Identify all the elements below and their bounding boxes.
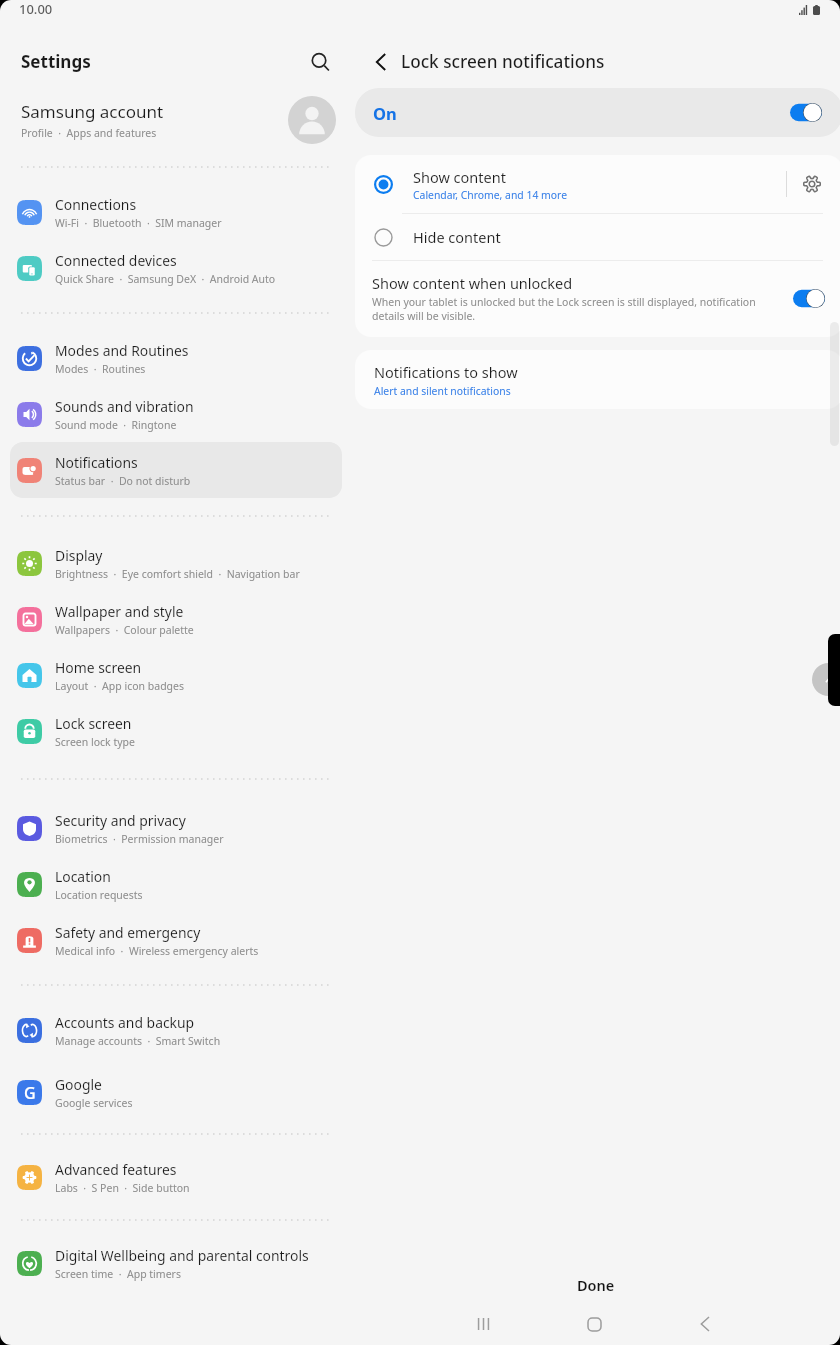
button[interactable]: Home screen bbox=[10, 647, 342, 703]
button[interactable]: Lock screen bbox=[10, 703, 342, 759]
staticText: Sound mode · Ringtone bbox=[55, 418, 177, 432]
button[interactable]: Display bbox=[10, 535, 342, 591]
staticText: Show content when unlocked bbox=[372, 273, 573, 293]
staticText: Medical info · Wireless emergency alerts bbox=[55, 944, 259, 958]
staticText: Alert and silent notifications bbox=[374, 384, 511, 398]
staticText: Lock screen notifications bbox=[401, 50, 605, 73]
staticText: When your tablet is unlocked but the Loc… bbox=[372, 295, 781, 323]
staticText: Settings bbox=[21, 50, 91, 73]
staticText: Google services bbox=[55, 1096, 133, 1110]
staticText: Lock screen bbox=[55, 714, 132, 733]
staticText: Home screen bbox=[55, 658, 142, 677]
staticText: Sounds and vibration bbox=[55, 397, 194, 416]
staticText: Brightness · Eye comfort shield · Naviga… bbox=[55, 567, 300, 581]
button[interactable]: Location bbox=[10, 856, 342, 912]
staticText: Profile · Apps and features bbox=[21, 126, 157, 140]
staticText: Wi-Fi · Bluetooth · SIM manager bbox=[55, 216, 222, 230]
button[interactable]: Advanced features bbox=[10, 1149, 342, 1205]
staticText: Display bbox=[55, 546, 103, 565]
button[interactable]: Back bbox=[685, 1304, 725, 1344]
staticText: Location bbox=[55, 867, 111, 886]
button[interactable]: Wallpaper and style bbox=[10, 591, 342, 647]
staticText: Safety and emergency bbox=[55, 923, 201, 942]
staticText: Location requests bbox=[55, 888, 143, 902]
staticText: 10.00 bbox=[19, 0, 53, 18]
button[interactable]: Modes and Routines bbox=[10, 330, 342, 386]
staticText: Connected devices bbox=[55, 251, 177, 270]
staticText: Security and privacy bbox=[55, 811, 186, 830]
staticText: Quick Share · Samsung DeX · Android Auto bbox=[55, 272, 276, 286]
staticText: Calendar, Chrome, and 14 more bbox=[413, 188, 567, 202]
staticText: Labs · S Pen · Side button bbox=[55, 1181, 190, 1195]
button[interactable]: Done bbox=[520, 1270, 672, 1300]
button[interactable]: Samsung account bbox=[0, 88, 352, 152]
button[interactable]: Search bbox=[302, 44, 338, 80]
staticText: Advanced features bbox=[55, 1160, 177, 1179]
staticText: Digital Wellbeing and parental controls bbox=[55, 1246, 309, 1265]
button[interactable]: Digital Wellbeing and parental controls bbox=[10, 1235, 342, 1291]
staticText: On bbox=[373, 102, 397, 124]
staticText: Wallpaper and style bbox=[55, 602, 184, 621]
staticText: Google bbox=[55, 1075, 102, 1094]
button[interactable]: Home bbox=[574, 1304, 614, 1344]
button[interactable]: Notifications to show bbox=[355, 350, 840, 409]
button[interactable]: Recent apps bbox=[463, 1304, 503, 1344]
staticText: Modes · Routines bbox=[55, 362, 146, 376]
button[interactable]: Accounts and backup bbox=[10, 1002, 342, 1058]
staticText: Screen lock type bbox=[55, 735, 135, 749]
button[interactable]: Connections bbox=[10, 184, 342, 240]
staticText: G bbox=[24, 1082, 36, 1104]
staticText: Wallpapers · Colour palette bbox=[55, 623, 194, 637]
staticText: Notifications bbox=[55, 453, 138, 472]
staticText: Notifications to show bbox=[374, 362, 518, 382]
staticText: Connections bbox=[55, 195, 137, 214]
button[interactable]: Connected devices bbox=[10, 240, 342, 296]
staticText: Hide content bbox=[413, 227, 501, 247]
button[interactable]: Back bbox=[361, 45, 395, 79]
button[interactable]: Hide content bbox=[355, 214, 840, 260]
button[interactable]: On bbox=[355, 88, 840, 137]
staticText: Show content bbox=[413, 167, 506, 187]
button[interactable]: Show content when unlocked bbox=[355, 261, 840, 337]
button[interactable]: Show content bbox=[355, 155, 840, 213]
staticText: Modes and Routines bbox=[55, 341, 189, 360]
button[interactable]: G bbox=[10, 1064, 342, 1120]
staticText: Biometrics · Permission manager bbox=[55, 832, 224, 846]
button[interactable]: Notifications bbox=[10, 442, 342, 498]
button[interactable]: Notification settings bbox=[787, 159, 837, 209]
staticText: Status bar · Do not disturb bbox=[55, 474, 191, 488]
button[interactable]: Security and privacy bbox=[10, 800, 342, 856]
staticText: Done bbox=[577, 1275, 615, 1295]
staticText: Manage accounts · Smart Switch bbox=[55, 1034, 221, 1048]
staticText: Accounts and backup bbox=[55, 1013, 195, 1032]
staticText: Screen time · App timers bbox=[55, 1267, 181, 1281]
button[interactable]: Safety and emergency bbox=[10, 912, 342, 968]
button[interactable]: Sounds and vibration bbox=[10, 386, 342, 442]
button[interactable]: Edge panel bbox=[812, 663, 840, 696]
staticText: Samsung account bbox=[21, 100, 164, 123]
staticText: Layout · App icon badges bbox=[55, 679, 185, 693]
